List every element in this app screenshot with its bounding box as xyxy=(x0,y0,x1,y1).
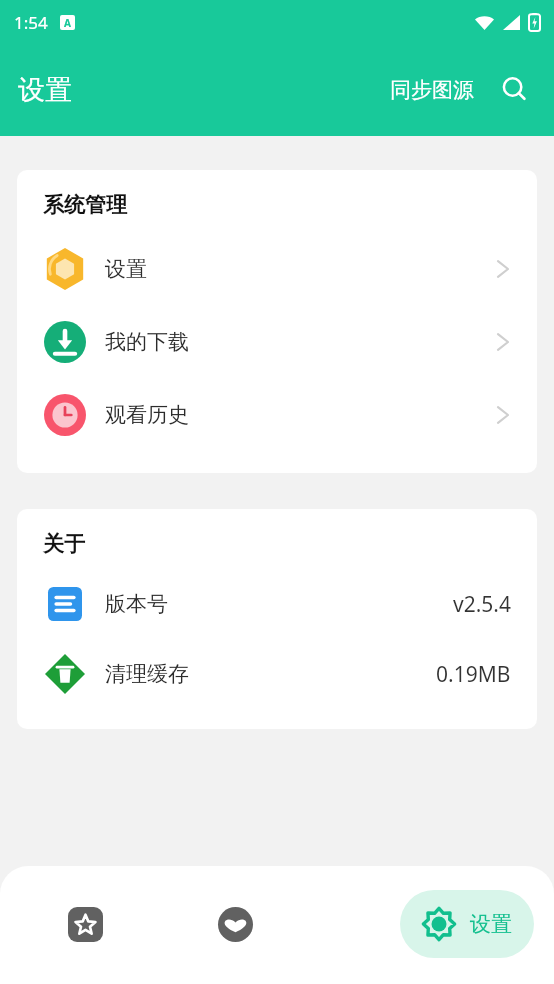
staticText: 关于 xyxy=(43,531,85,557)
staticText: 同步图源 xyxy=(390,77,474,103)
button[interactable]: Favorites xyxy=(160,890,310,958)
button[interactable]: 同步图源 xyxy=(386,71,478,109)
button[interactable]: Bookshelf xyxy=(10,890,160,958)
button[interactable]: 观看历史 xyxy=(17,378,537,451)
button[interactable]: 设置 xyxy=(400,890,534,958)
staticText: 0.19MB xyxy=(436,660,511,689)
button[interactable]: 设置 xyxy=(17,232,537,305)
staticText: 观看历史 xyxy=(105,402,189,428)
button[interactable]: 清理缓存 xyxy=(17,639,537,709)
staticText: 1:54 xyxy=(14,11,48,34)
button[interactable]: 版本号 xyxy=(17,569,537,639)
staticText: A xyxy=(64,16,71,30)
staticText: 清理缓存 xyxy=(105,661,189,687)
staticText: 设置 xyxy=(18,73,72,107)
staticText: 我的下载 xyxy=(105,329,189,355)
staticText: v2.5.4 xyxy=(453,590,511,619)
staticText: 版本号 xyxy=(105,591,168,617)
staticText: 设置 xyxy=(105,256,147,282)
button[interactable]: 我的下载 xyxy=(17,305,537,378)
staticText: 系统管理 xyxy=(43,192,127,218)
staticText: 设置 xyxy=(470,911,512,937)
button[interactable]: Search xyxy=(492,67,538,113)
